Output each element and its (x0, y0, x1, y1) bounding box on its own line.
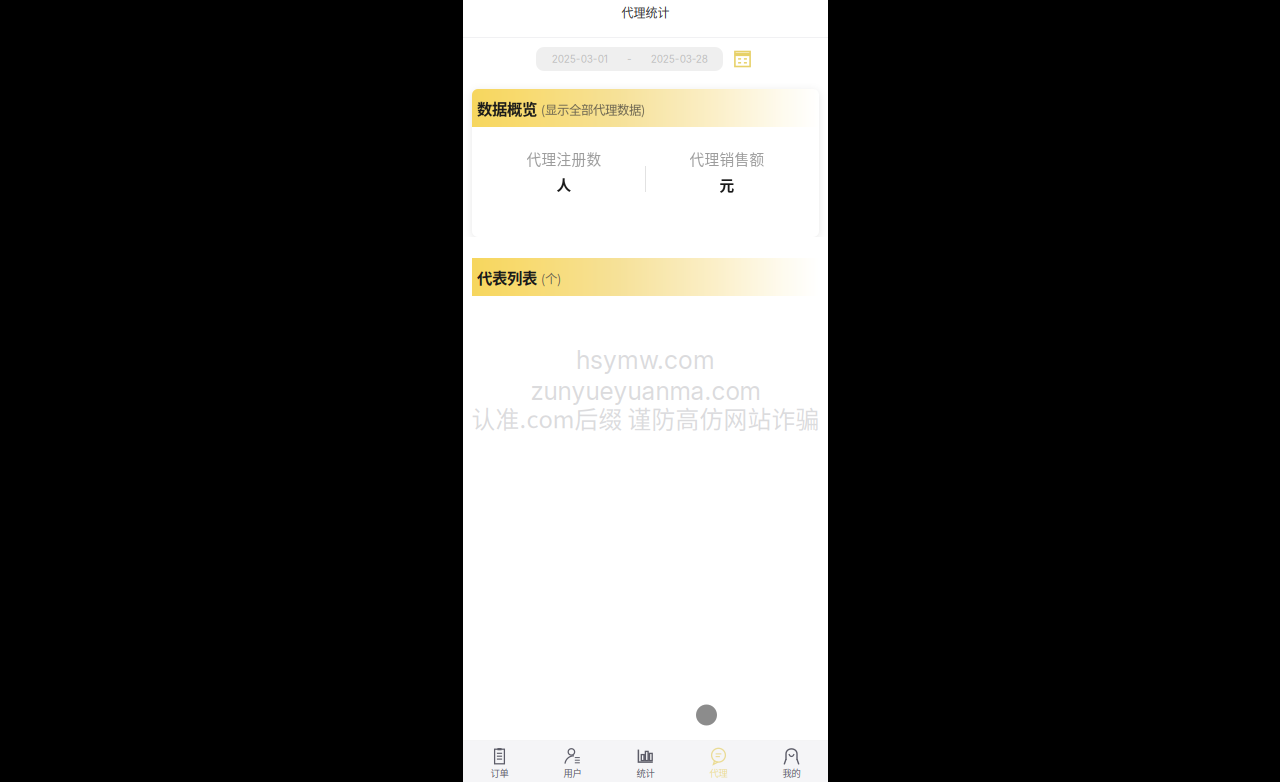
button[interactable]: 用户 (536, 741, 609, 782)
staticText: hsymw.com (576, 345, 715, 375)
staticText: 元 (719, 174, 734, 195)
button[interactable]: 统计 (609, 741, 682, 782)
button[interactable]: 我的 (755, 741, 828, 782)
staticText: (个) (541, 269, 561, 287)
staticText: 我的 (782, 766, 800, 779)
button[interactable]: 2025-03-01 (536, 47, 723, 71)
staticText: 2025-03-01 (552, 53, 608, 65)
staticText: 认准.com后缀 谨防高仿网站诈骗 (471, 401, 819, 435)
staticText: zunyueyuanma.com (530, 376, 760, 406)
button[interactable]: 代理 (682, 741, 755, 782)
staticText: - (627, 53, 632, 65)
staticText: 代理销售额 (689, 148, 764, 169)
staticText: 代理统计 (621, 4, 669, 21)
staticText: 代理注册数 (526, 148, 601, 169)
staticText: 代理 (709, 766, 727, 779)
button[interactable]: Pick date range (734, 47, 751, 71)
staticText: 人 (556, 174, 571, 195)
button[interactable]: 订单 (463, 741, 536, 782)
staticText: 2025-03-28 (651, 53, 708, 65)
staticText: 代表列表 (477, 266, 537, 288)
staticText: 用户 (563, 766, 581, 779)
staticText: 统计 (636, 766, 654, 779)
staticText: (显示全部代理数据) (541, 100, 645, 118)
staticText: 数据概览 (477, 97, 537, 119)
staticText: 订单 (490, 766, 508, 779)
